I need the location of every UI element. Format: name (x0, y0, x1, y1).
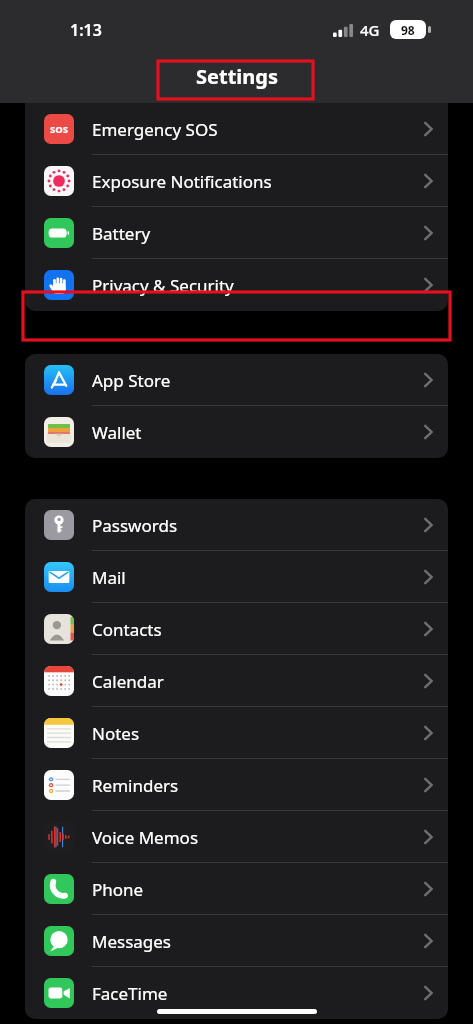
staticText: Contacts (92, 618, 423, 641)
staticText: Messages (92, 930, 423, 953)
staticText: Calendar (92, 670, 423, 693)
button[interactable]: Voice Memos (25, 811, 448, 863)
button[interactable]: SOS (25, 103, 448, 155)
button[interactable]: FaceTime (25, 967, 448, 1019)
staticText: Wallet (92, 421, 423, 444)
staticText: Privacy & Security (92, 274, 423, 297)
other: Home indicator (157, 1009, 317, 1014)
staticText: Settings (196, 63, 278, 90)
staticText: Passwords (92, 514, 423, 537)
button[interactable]: Exposure Notifications (25, 155, 448, 207)
staticText: 4G (360, 20, 380, 40)
staticText: Voice Memos (92, 826, 423, 849)
staticText: Phone (92, 878, 423, 901)
button[interactable]: Contacts (25, 603, 448, 655)
staticText: 1:13 (70, 19, 102, 41)
staticText: SOS (50, 123, 68, 136)
button[interactable]: Mail (25, 551, 448, 603)
button[interactable]: Wallet (25, 406, 448, 458)
button[interactable]: App Store (25, 354, 448, 406)
button[interactable]: Face ID & Passcode (25, 62, 448, 104)
staticText: Mail (92, 566, 423, 589)
staticText: App Store (92, 369, 423, 392)
staticText: Notes (92, 722, 423, 745)
staticText: 98 (401, 22, 415, 38)
button[interactable]: Notes (25, 707, 448, 759)
staticText: Emergency SOS (92, 118, 423, 141)
staticText: Battery (92, 222, 423, 245)
button[interactable]: Privacy & Security (25, 259, 448, 311)
staticText: Reminders (92, 774, 423, 797)
button[interactable]: Calendar (25, 655, 448, 707)
button[interactable]: Messages (25, 915, 448, 967)
button[interactable]: Battery (25, 207, 448, 259)
staticText: FaceTime (92, 982, 423, 1005)
staticText: Face ID & Passcode (92, 72, 423, 95)
button[interactable]: Phone (25, 863, 448, 915)
button[interactable]: Passwords (25, 499, 448, 551)
staticText: Exposure Notifications (92, 170, 423, 193)
button[interactable]: Reminders (25, 759, 448, 811)
